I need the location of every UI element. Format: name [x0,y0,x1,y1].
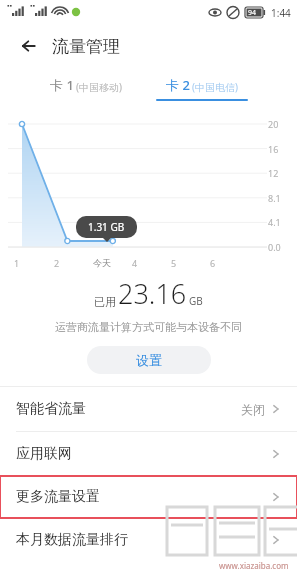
staticText: www.xiazaiba.com [219,560,289,571]
staticText: 94 [248,8,257,18]
staticText: 20 [268,118,279,130]
staticText: 卡 2 [166,76,190,94]
staticText: 2 [54,257,60,269]
staticText: 设置 [136,352,162,368]
staticText: 流量管理 [52,36,120,57]
button[interactable]: 卡 1 [46,76,126,101]
staticText: 23.16 [118,275,187,312]
staticText: 运营商流量计算方式可能与本设备不同 [55,320,242,334]
button[interactable]: 本月数据流量排行 [0,518,297,562]
staticText: 8.1 [268,192,281,204]
staticText: 更多流量设置 [16,488,100,506]
button[interactable]: 更多流量设置 [0,476,297,518]
staticText: 卡 1 [50,76,74,94]
staticText: 关闭 [241,402,265,417]
staticText: 本月数据流量排行 [16,531,128,549]
button[interactable]: 设置 [87,346,211,374]
button[interactable]: 智能省流量 [0,387,297,431]
staticText: GB [189,294,203,308]
staticText: 智能省流量 [16,400,86,418]
staticText: 4.1 [268,216,281,228]
button[interactable]: 卡 2 [152,76,252,101]
button[interactable]: Back [14,31,44,61]
staticText: 5 [171,257,177,269]
staticText: 1.31 GB [88,220,125,234]
staticText: 0.0 [268,241,281,253]
staticText: 1 [14,257,20,269]
staticText: 6 [210,257,216,269]
staticText: 16 [268,143,279,155]
staticText: 应用联网 [16,445,72,463]
staticText: 4 [132,257,138,269]
staticText: (中国移动) [76,80,122,94]
button[interactable]: 应用联网 [0,432,297,476]
staticText: 1:44 [271,6,291,20]
staticText: (中国电信) [192,80,238,94]
staticText: 今天 [93,257,111,268]
staticText: 12 [268,167,279,179]
staticText: 已用 [94,295,116,309]
